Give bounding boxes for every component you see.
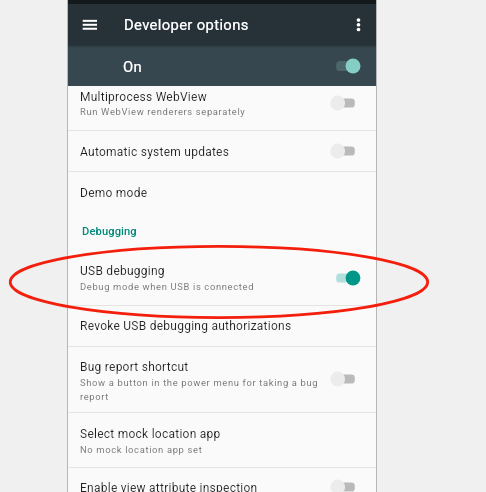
button[interactable]: Switch on [326, 264, 370, 292]
button[interactable]: Switch off [326, 137, 370, 165]
staticText: Enable view attribute inspection [80, 481, 258, 492]
staticText: No mock location app set [80, 444, 203, 455]
button[interactable] [68, 347, 376, 413]
staticText: report [80, 391, 110, 402]
staticText: Automatic system updates [80, 145, 230, 159]
staticText: Bug report shortcut [80, 360, 189, 374]
staticText: USB debugging [80, 264, 165, 278]
staticText: On [123, 58, 142, 75]
staticText: Debugging [82, 225, 137, 238]
staticText: Demo mode [80, 186, 148, 200]
button[interactable] [68, 249, 376, 305]
staticText: Run WebView renderers separately [80, 106, 246, 117]
staticText: Multiprocess WebView [80, 90, 207, 104]
button[interactable]: Switch off [326, 473, 370, 492]
staticText: Show a button in the power menu for taki… [80, 377, 319, 388]
staticText: Developer options [124, 16, 249, 33]
staticText: Select mock location app [80, 427, 221, 441]
staticText: Debug mode when USB is connected [80, 281, 255, 292]
button[interactable]: Switch off [326, 365, 370, 393]
button[interactable]: Switch off [326, 89, 370, 117]
button[interactable] [68, 172, 376, 212]
staticText: Revoke USB debugging authorizations [80, 319, 292, 333]
button[interactable] [68, 468, 376, 492]
button[interactable]: More options [348, 15, 368, 35]
button[interactable] [68, 86, 376, 129]
button[interactable] [68, 306, 376, 346]
button[interactable] [68, 413, 376, 467]
button[interactable]: Open navigation drawer [80, 15, 100, 35]
button[interactable] [68, 48, 376, 86]
button[interactable] [68, 131, 376, 172]
